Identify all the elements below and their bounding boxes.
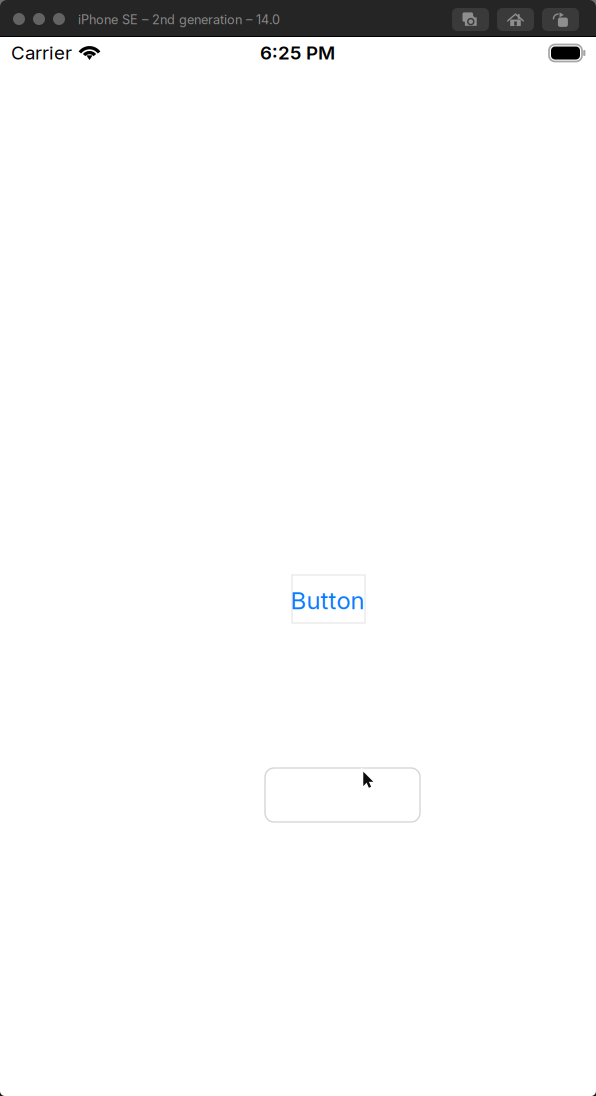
staticText: Carrier	[11, 41, 72, 64]
button[interactable]: Button	[292, 575, 365, 623]
button[interactable]: Home	[497, 8, 534, 31]
staticText: Button	[290, 586, 364, 615]
button[interactable]: Rotate	[542, 8, 579, 31]
staticText: iPhone SE – 2nd generation – 14.0	[78, 12, 280, 27]
button[interactable]: Empty rounded box	[265, 768, 420, 822]
button[interactable]: Screenshot	[452, 8, 489, 31]
staticText: 6:25 PM	[260, 41, 335, 64]
